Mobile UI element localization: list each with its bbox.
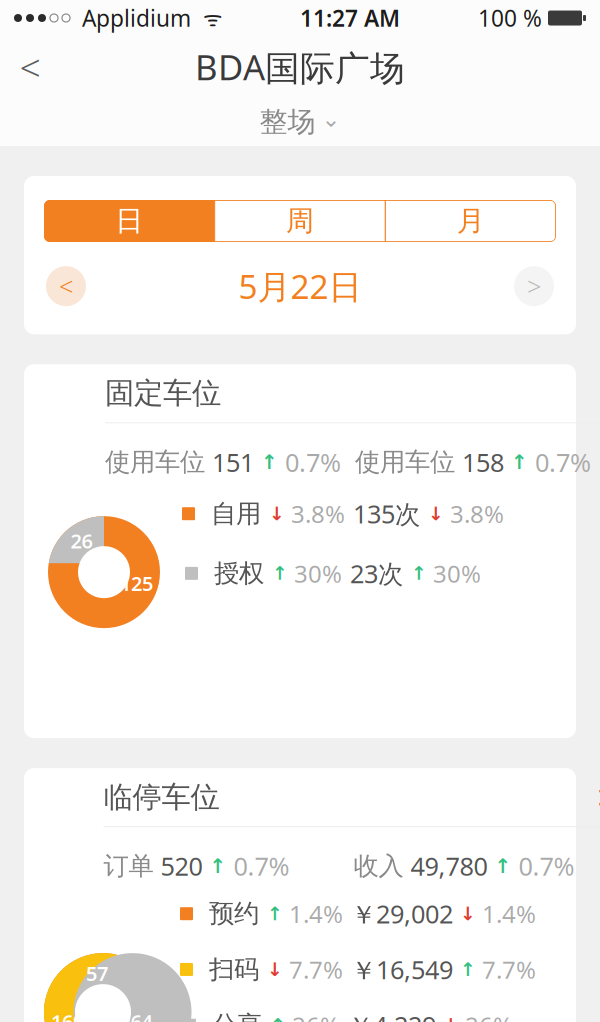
staticText: 扫码 [193,954,267,985]
staticText: > [597,776,600,818]
staticText: ↓ [460,903,476,924]
button[interactable]: Back [0,43,60,91]
staticText: 月 [457,204,485,238]
staticText: 周 [286,204,314,238]
staticText: 264 [119,1008,152,1022]
staticText: 3.8% [285,498,345,530]
staticText: 151 [205,445,261,479]
staticText: 1.4% [476,898,536,930]
staticText: 100 % [478,3,542,33]
staticText: 订单 [103,850,153,881]
staticText: 169 [51,1008,84,1022]
staticText: 临停车位 [103,779,219,815]
staticText: 自用 [195,498,269,529]
staticText: BDA国际广场 [195,44,405,90]
staticText: 使用车位 [355,446,455,478]
staticText: ↓ [269,503,285,524]
staticText: 30% [427,557,481,589]
staticText: ↑ [411,563,427,584]
staticText: 26% [459,1009,513,1022]
staticText: < [59,269,73,303]
staticText: 日 [115,204,143,238]
staticText: 26% [286,1009,340,1022]
staticText: ↑ [494,855,511,877]
staticText: ￥4,229 [348,1008,443,1022]
staticText: > [527,269,541,303]
staticText: 0.7% [278,445,341,479]
staticText: 使用车位 [105,446,205,478]
staticText: 授权 [198,558,272,589]
staticText: 收入 [353,850,403,881]
staticText: 125 [120,570,153,597]
staticText: ↑ [272,563,288,584]
staticText: 49,780 [403,849,494,883]
staticText: 26 [71,527,93,554]
staticText: ￥29,002 [351,897,460,931]
button[interactable]: 周 [215,200,385,242]
button[interactable]: 固定车位 [85,364,600,422]
button[interactable]: 整场 [0,98,600,146]
staticText: 30% [288,557,342,589]
staticText: 5月22日 [238,264,361,308]
staticText: 135次 [353,497,428,530]
staticText: ↓ [443,1015,459,1022]
staticText: ᯤ [191,4,222,32]
staticText: ⌄ [321,106,340,132]
staticText: ↑ [261,451,278,473]
staticText: ↑ [511,451,528,473]
button[interactable]: 临停车位 [83,768,600,826]
staticText: ↑ [270,1015,286,1022]
staticText: 0.7% [528,445,591,479]
staticText: 23次 [350,556,411,590]
staticText: 1.4% [283,898,343,930]
button[interactable]: 日 [44,200,215,242]
staticText: 3.8% [444,498,504,530]
staticText: ↑ [267,903,283,924]
staticText: 0.7% [226,849,289,883]
staticText: 0.7% [511,849,574,883]
staticText: Applidium [70,3,191,33]
staticText: 11:27 AM [300,3,400,33]
button[interactable]: Previous day [46,266,86,306]
staticText: ↑ [209,855,226,877]
staticText: 158 [455,445,511,479]
staticText: 520 [153,849,209,883]
staticText: 固定车位 [105,375,221,411]
button[interactable]: 月 [385,200,556,242]
staticText: < [19,42,40,92]
button[interactable]: Next day [514,266,554,306]
staticText: 7.7% [476,953,536,985]
staticText: 57 [86,960,108,986]
staticText: ↑ [460,959,476,980]
staticText: 整场 [259,105,315,139]
staticText: ↓ [428,503,444,524]
staticText: 分享 [196,1010,270,1022]
staticText: 7.7% [283,953,343,985]
staticText: ￥16,549 [351,953,460,986]
staticText: 预约 [193,898,267,929]
staticText: ↓ [267,959,283,980]
